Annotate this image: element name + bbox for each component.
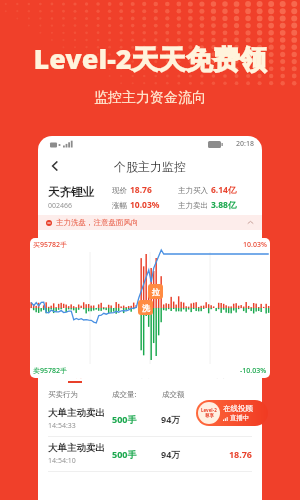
staticText: 14:54:10 [48,456,76,466]
staticText: 94万 [161,413,210,425]
button[interactable]: Level-2 [196,400,268,426]
staticText: 尊享 [205,413,214,419]
staticText: 现价 [112,186,127,195]
staticText: 成交额 [162,390,212,399]
staticText: 500手 [112,448,161,460]
staticText: 10.03% [130,199,160,211]
staticText: 14:54:33 [48,421,76,431]
staticText: 3.88亿 [211,199,237,211]
staticText: 卖95782手 [33,366,68,376]
staticText: 个股主力监控 [114,159,186,174]
staticText: 洗 [142,303,150,313]
staticText: 18.76 [130,184,152,196]
staticText: 涨幅 [112,201,127,210]
staticText: 500手 [112,413,161,425]
staticText: 直播中 [230,414,250,422]
staticText: 监控主力资金流向 [0,89,300,107]
staticText: Level-2天天免费领 [0,40,300,77]
staticText: 主力洗盘，注意盘面风向 [56,218,139,227]
button[interactable]: 返回 [44,155,66,177]
staticText: 10.03% [243,240,267,250]
staticText: 20:18 [236,139,254,149]
staticText: 94万 [161,448,210,460]
staticText: 002466 [48,201,73,211]
staticText: 成交量: [112,389,162,399]
button[interactable]: 主力洗盘，注意盘面风向 [38,215,262,230]
staticText: 大单主动卖出 [48,407,105,419]
button[interactable]: 大单主动卖出 [38,437,262,471]
staticText: 在线投顾 [223,404,253,413]
staticText: 主力买入 [178,186,208,195]
staticText: 主力卖出 [178,201,208,210]
staticText: -10.03% [240,366,267,376]
button[interactable]: 卖单 [187,364,262,386]
staticText: 18.76 [210,413,252,425]
staticText: 拉 [152,287,160,297]
staticText: 全部 [66,368,84,379]
staticText: 买卖行为 [48,390,112,399]
staticText: Level-2 [201,407,217,413]
button[interactable]: 全部 [38,364,112,386]
button[interactable]: 大单主动卖出 [38,402,262,436]
staticText: 买95782手 [33,240,68,250]
staticText: 6.14亿 [211,184,237,196]
staticText: 18.76 [210,448,252,460]
staticText: 大单主动卖出 [48,442,105,454]
staticText: 天齐锂业 [48,185,94,199]
